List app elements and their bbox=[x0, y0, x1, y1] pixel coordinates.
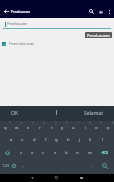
staticText: q bbox=[4, 125, 7, 131]
staticText: j bbox=[79, 137, 81, 143]
staticText: i bbox=[85, 125, 87, 131]
button[interactable]: s bbox=[17, 133, 28, 146]
button[interactable]: Comma bbox=[18, 159, 28, 172]
button[interactable]: h bbox=[63, 133, 74, 146]
button[interactable]: OK bbox=[0, 106, 30, 121]
staticText: m bbox=[88, 150, 92, 156]
staticText: 4 bbox=[43, 121, 45, 125]
staticText: l bbox=[102, 137, 104, 143]
staticText: k bbox=[89, 137, 92, 143]
button[interactable]: 2 bbox=[11, 121, 22, 134]
button[interactable]: f bbox=[40, 133, 51, 146]
staticText: Selamat bbox=[84, 110, 103, 117]
staticText: h bbox=[67, 137, 70, 143]
button[interactable]: x bbox=[27, 146, 38, 159]
button[interactable]: b bbox=[61, 146, 72, 159]
button[interactable]: 0 bbox=[103, 121, 114, 134]
button[interactable]: Contacts bbox=[95, 5, 106, 18]
button[interactable]: a bbox=[6, 133, 17, 146]
staticText: Penelusuran bbox=[7, 21, 27, 26]
staticText: a bbox=[10, 137, 13, 143]
staticText: c bbox=[42, 150, 45, 156]
staticText: 8 bbox=[89, 121, 91, 125]
staticText: 3 bbox=[32, 121, 34, 125]
staticText: v bbox=[54, 150, 57, 156]
button[interactable]: 1 bbox=[0, 121, 11, 134]
button[interactable]: Period bbox=[86, 159, 97, 172]
button[interactable]: Shift bbox=[0, 146, 15, 159]
button[interactable]: Navigate up bbox=[1, 5, 12, 18]
button[interactable]: k bbox=[85, 133, 96, 146]
button[interactable]: d bbox=[29, 133, 40, 146]
staticText: 5 bbox=[55, 121, 57, 125]
button[interactable]: g bbox=[51, 133, 62, 146]
button[interactable]: 4 bbox=[34, 121, 45, 134]
button[interactable]: Selamat bbox=[62, 106, 114, 121]
button[interactable]: Symbols bbox=[0, 159, 11, 172]
staticText: y bbox=[61, 125, 64, 131]
staticText: . bbox=[91, 162, 93, 168]
staticText: , bbox=[22, 162, 24, 168]
staticText: d bbox=[33, 137, 36, 143]
button[interactable]: 3 bbox=[23, 121, 34, 134]
staticText: 7 bbox=[77, 121, 79, 125]
button[interactable]: Recent apps bbox=[73, 174, 90, 181]
staticText: g bbox=[55, 137, 58, 143]
button[interactable]: Emoji bbox=[9, 159, 19, 172]
button[interactable]: l bbox=[97, 133, 108, 146]
button[interactable]: 5 bbox=[46, 121, 57, 134]
button[interactable]: Back bbox=[24, 174, 41, 181]
staticText: e bbox=[27, 125, 30, 131]
button[interactable]: z bbox=[15, 146, 26, 159]
staticText: p bbox=[107, 125, 110, 131]
staticText: 6 bbox=[66, 121, 68, 125]
button[interactable]: v bbox=[50, 146, 61, 159]
staticText: x bbox=[31, 150, 34, 156]
button[interactable]: m bbox=[84, 146, 95, 159]
button[interactable]: Proses kata rusak bbox=[2, 40, 34, 47]
button[interactable]: Search bbox=[96, 159, 113, 172]
staticText: z bbox=[20, 150, 22, 156]
button[interactable]: Backspace bbox=[95, 146, 114, 159]
staticText: o bbox=[95, 125, 98, 131]
button[interactable]: More options bbox=[104, 5, 114, 18]
staticText: 1 bbox=[9, 121, 11, 125]
button[interactable]: n bbox=[72, 146, 83, 159]
staticText: u bbox=[72, 125, 75, 131]
staticText: b bbox=[65, 150, 68, 156]
staticText: Penelusuran bbox=[87, 33, 110, 38]
button[interactable]: Home bbox=[48, 174, 65, 181]
staticText: 0 bbox=[112, 121, 114, 125]
button[interactable]: 6 bbox=[57, 121, 68, 134]
staticText: r bbox=[39, 125, 41, 131]
staticText: Penelusuran bbox=[11, 10, 31, 14]
staticText: f bbox=[45, 137, 47, 143]
button[interactable]: 8 bbox=[80, 121, 91, 134]
button[interactable]: j bbox=[74, 133, 85, 146]
button[interactable]: 9 bbox=[91, 121, 102, 134]
staticText: OK bbox=[11, 110, 19, 117]
staticText: Proses kata rusak bbox=[9, 42, 34, 46]
staticText: 9 bbox=[100, 121, 102, 125]
staticText: t bbox=[51, 125, 53, 131]
button[interactable]: Search bbox=[86, 5, 97, 18]
staticText: w bbox=[15, 125, 19, 131]
staticText: 123 bbox=[2, 163, 10, 169]
button[interactable]: Penelusuran bbox=[85, 32, 112, 38]
button[interactable]: 7 bbox=[68, 121, 79, 134]
button[interactable]: c bbox=[38, 146, 49, 159]
staticText: n bbox=[76, 150, 79, 156]
staticText: s bbox=[21, 137, 24, 143]
staticText: 2 bbox=[20, 121, 22, 125]
